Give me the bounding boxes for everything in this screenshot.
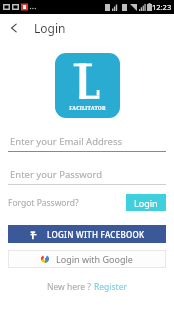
button[interactable]: Back (0, 14, 28, 42)
staticText: Login with Google (56, 253, 133, 265)
button[interactable]: Login (126, 194, 166, 211)
staticText: Register (94, 281, 127, 293)
staticText: LOGIN WITH FACEBOOK (47, 229, 145, 240)
button[interactable]: Enter your Password (8, 168, 166, 185)
button[interactable]: LOGIN WITH FACEBOOK (8, 225, 166, 243)
button[interactable]: Enter your Email Address (8, 135, 166, 152)
staticText: Enter your Password (10, 168, 103, 181)
button[interactable]: Register (94, 281, 127, 293)
staticText: Forgot Password? (8, 197, 79, 209)
staticText: FACILITATOR (69, 105, 106, 112)
button[interactable]: Login with Google (8, 250, 166, 268)
staticText: Enter your Email Address (10, 135, 123, 148)
staticText: New here ? (47, 281, 94, 293)
staticText: 12:23 (152, 2, 172, 12)
staticText: Login (34, 20, 66, 36)
button[interactable]: Forgot Password? (8, 195, 79, 211)
staticText: Login (134, 197, 158, 209)
